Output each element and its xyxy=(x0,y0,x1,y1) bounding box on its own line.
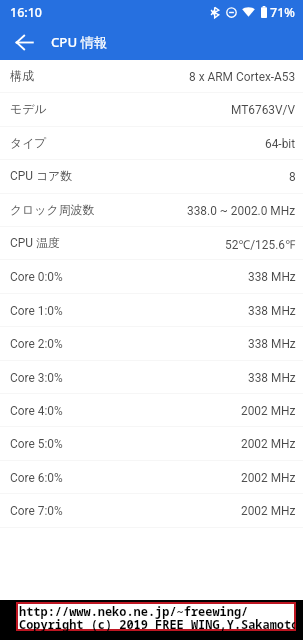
staticText: CPU 情報 xyxy=(51,33,107,51)
staticText: Core 6:0% xyxy=(10,471,63,485)
button[interactable]: Core 0:0% xyxy=(0,260,303,293)
staticText: 52℃/125.6℉ xyxy=(225,236,296,252)
button[interactable]: Core 5:0% xyxy=(0,427,303,460)
staticText: 64-bit xyxy=(265,137,296,151)
staticText: Core 1:0% xyxy=(10,304,63,318)
staticText: モデル xyxy=(10,102,47,117)
staticText: 2002 MHz xyxy=(241,437,296,451)
staticText: 8 xyxy=(289,170,296,184)
staticText: MT6763V/V xyxy=(231,103,296,117)
button[interactable]: Core 7:0% xyxy=(0,494,303,527)
staticText: 構成 xyxy=(10,69,34,84)
button[interactable]: モデル xyxy=(0,93,303,126)
button[interactable]: CPU 温度 xyxy=(0,227,303,260)
staticText: 16:10 xyxy=(10,4,43,21)
staticText: 8 x ARM Cortex-A53 xyxy=(189,70,296,84)
staticText: タイプ xyxy=(10,136,47,151)
staticText: Core 5:0% xyxy=(10,437,63,451)
staticText: http://www.neko.ne.jp/~freewing/ xyxy=(19,603,249,619)
staticText: 338 MHz xyxy=(248,371,296,385)
staticText: 338 MHz xyxy=(248,270,296,284)
button[interactable]: 構成 xyxy=(0,60,303,93)
button[interactable]: Back xyxy=(0,24,48,60)
staticText: Core 7:0% xyxy=(10,504,63,518)
button[interactable]: Core 6:0% xyxy=(0,461,303,494)
staticText: CPU 温度 xyxy=(10,236,60,251)
staticText: 338 MHz xyxy=(248,304,296,318)
staticText: クロック周波数 xyxy=(10,203,95,218)
staticText: Core 3:0% xyxy=(10,371,63,385)
button[interactable]: Core 3:0% xyxy=(0,361,303,394)
staticText: 338.0 ~ 2002.0 MHz xyxy=(187,204,296,218)
button[interactable]: タイプ xyxy=(0,127,303,160)
button[interactable]: Core 1:0% xyxy=(0,294,303,327)
staticText: 2002 MHz xyxy=(241,404,296,418)
staticText: CPU コア数 xyxy=(10,169,73,184)
staticText: Core 0:0% xyxy=(10,270,63,284)
staticText: Core 2:0% xyxy=(10,337,63,351)
button[interactable]: CPU コア数 xyxy=(0,160,303,193)
staticText: 71% xyxy=(270,4,295,21)
staticText: 338 MHz xyxy=(248,337,296,351)
button[interactable]: Core 2:0% xyxy=(0,327,303,360)
staticText: Core 4:0% xyxy=(10,404,63,418)
button[interactable]: クロック周波数 xyxy=(0,194,303,227)
staticText: 2002 MHz xyxy=(241,504,296,518)
button[interactable]: Core 4:0% xyxy=(0,394,303,427)
staticText: Copyright (c) 2019 FREE WING,Y.Sakamoto xyxy=(19,616,295,632)
staticText: 2002 MHz xyxy=(241,471,296,485)
